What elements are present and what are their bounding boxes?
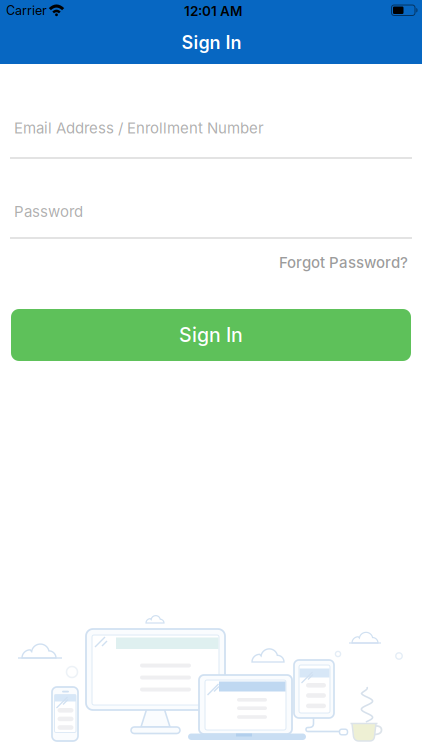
staticText: Forgot Password?	[279, 253, 408, 272]
staticText: Password	[14, 202, 83, 221]
button[interactable]: Password	[10, 196, 412, 238]
staticText: Email Address / Enrollment Number	[14, 119, 264, 137]
staticText: Sign In	[179, 323, 243, 347]
staticText: 12:01 AM	[184, 3, 242, 19]
staticText: Carrier	[6, 3, 47, 18]
button[interactable]: Sign In	[11, 309, 411, 361]
button[interactable]: Email Address / Enrollment Number	[10, 112, 412, 158]
button[interactable]: Forgot Password?	[279, 253, 408, 272]
staticText: Sign In	[181, 31, 241, 53]
